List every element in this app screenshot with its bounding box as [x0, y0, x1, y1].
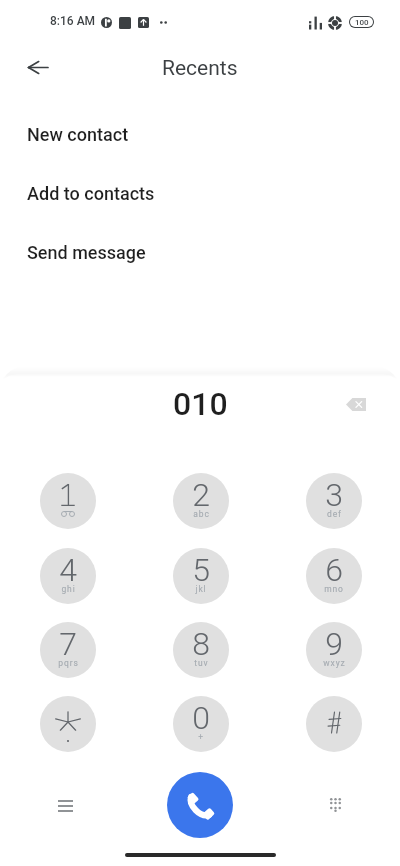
button[interactable]: 4 [40, 548, 96, 604]
staticText: 5 [192, 551, 210, 589]
button[interactable]: 9 [306, 622, 362, 678]
button[interactable]: 2 [173, 473, 229, 529]
button[interactable]: Call history [41, 782, 89, 830]
staticText: 6 [325, 551, 343, 589]
staticText: 010 [173, 385, 228, 423]
staticText: mno [324, 584, 344, 594]
staticText: Add to contacts [27, 183, 155, 204]
button[interactable]: 0 [173, 696, 229, 752]
staticText: 2 [192, 476, 210, 514]
staticText: 3 [325, 476, 343, 514]
staticText: wxyz [323, 658, 346, 668]
staticText: + [198, 732, 204, 742]
button[interactable]: 8 [173, 622, 229, 678]
button[interactable] [306, 696, 362, 752]
staticText: abc [193, 509, 210, 519]
button[interactable]: 5 [173, 548, 229, 604]
staticText: 100 [355, 18, 369, 27]
button[interactable]: Call [167, 772, 233, 838]
button[interactable]: New contact [0, 105, 400, 164]
staticText: pqrs [58, 658, 79, 668]
staticText: ghi [61, 584, 76, 594]
button[interactable]: Add to contacts [0, 164, 400, 223]
button[interactable]: 6 [306, 548, 362, 604]
button[interactable]: Send message [0, 223, 400, 282]
button[interactable]: Backspace [337, 385, 375, 423]
staticText: 4 [59, 551, 77, 589]
staticText: jkl [195, 584, 207, 594]
button[interactable] [40, 473, 96, 529]
staticText: New contact [27, 124, 129, 145]
button[interactable]: Keypad [311, 781, 359, 829]
staticText: 7 [59, 625, 77, 663]
button[interactable] [40, 696, 96, 752]
staticText: Recents [162, 56, 238, 81]
staticText: Send message [27, 242, 146, 263]
staticText: 0 [192, 699, 210, 737]
button[interactable]: Back [14, 43, 62, 91]
button[interactable]: 7 [40, 622, 96, 678]
staticText: def [327, 509, 342, 519]
staticText: tuv [194, 658, 209, 668]
staticText: 8:16 AM [50, 14, 96, 28]
staticText: 9 [325, 625, 343, 663]
button[interactable]: 3 [306, 473, 362, 529]
staticText: 8 [192, 625, 210, 663]
